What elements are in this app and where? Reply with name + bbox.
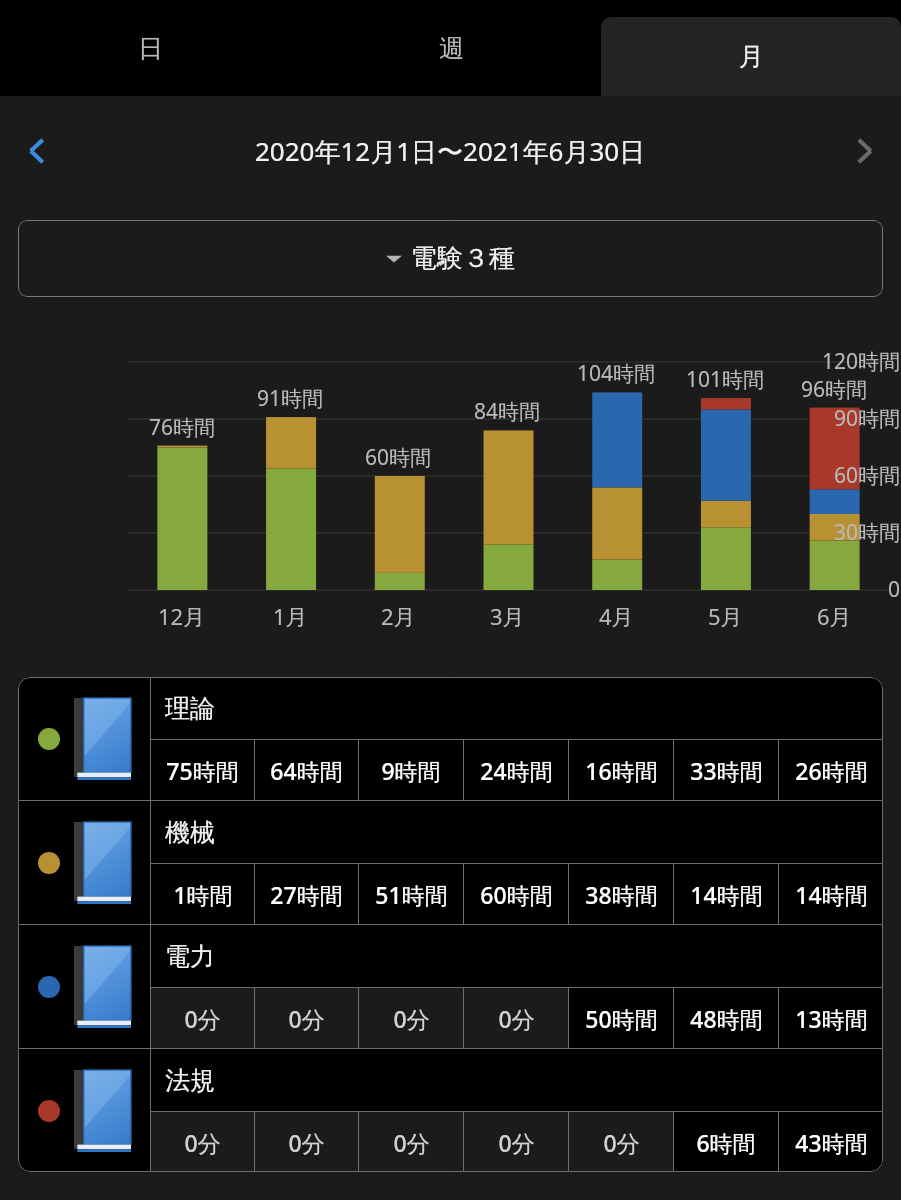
- button[interactable]: 日: [0, 0, 301, 96]
- staticText: 法規: [165, 1065, 215, 1096]
- staticText: 2020年12月1日〜2021年6月30日: [255, 133, 646, 169]
- button[interactable]: 0分: [151, 1112, 254, 1172]
- staticText: 38時間: [585, 879, 658, 910]
- staticText: 16時間: [585, 755, 658, 786]
- button[interactable]: 0分: [359, 1112, 463, 1172]
- staticText: 96時間: [801, 375, 868, 404]
- button[interactable]: 1時間: [151, 864, 254, 924]
- button[interactable]: 0分: [255, 988, 358, 1048]
- staticText: 0分: [498, 1003, 535, 1034]
- button[interactable]: 14時間: [779, 864, 883, 924]
- button[interactable]: 51時間: [359, 864, 463, 924]
- button[interactable]: 26時間: [779, 740, 883, 800]
- button[interactable]: 9時間: [359, 740, 463, 800]
- staticText: 0分: [393, 1127, 430, 1158]
- staticText: 3月: [490, 601, 525, 631]
- button[interactable]: 機械: [18, 801, 883, 924]
- button[interactable]: 13時間: [779, 988, 883, 1048]
- staticText: 9時間: [381, 755, 441, 786]
- button[interactable]: Previous period: [6, 120, 68, 182]
- staticText: 30時間: [834, 518, 901, 547]
- button[interactable]: 33時間: [674, 740, 778, 800]
- staticText: 50時間: [585, 1003, 658, 1034]
- staticText: 27時間: [270, 879, 343, 910]
- staticText: 60時間: [834, 461, 901, 490]
- button[interactable]: 48時間: [674, 988, 778, 1048]
- button[interactable]: 64時間: [255, 740, 358, 800]
- button[interactable]: 理論: [18, 677, 883, 800]
- staticText: 104時間: [577, 359, 656, 388]
- staticText: 電験３種: [411, 242, 515, 275]
- staticText: 60時間: [365, 443, 432, 472]
- staticText: 13時間: [795, 1003, 868, 1034]
- staticText: 0分: [288, 1127, 325, 1158]
- button[interactable]: 6時間: [674, 1112, 778, 1172]
- button[interactable]: 0分: [255, 1112, 358, 1172]
- button[interactable]: Next period: [833, 120, 895, 182]
- staticText: 84時間: [474, 397, 541, 426]
- staticText: 0: [888, 575, 901, 604]
- staticText: 0分: [184, 1003, 221, 1034]
- staticText: 120時間: [822, 347, 901, 376]
- staticText: 12月: [158, 601, 206, 631]
- button[interactable]: 27時間: [255, 864, 358, 924]
- staticText: 6時間: [696, 1127, 756, 1158]
- button[interactable]: 月: [601, 17, 901, 96]
- button[interactable]: 電力: [18, 925, 883, 1048]
- button[interactable]: 法規: [18, 1049, 883, 1172]
- button[interactable]: 0分: [569, 1112, 673, 1172]
- staticText: 26時間: [795, 755, 868, 786]
- button[interactable]: 16時間: [569, 740, 673, 800]
- button[interactable]: 38時間: [569, 864, 673, 924]
- button[interactable]: 60時間: [464, 864, 568, 924]
- staticText: 64時間: [270, 755, 343, 786]
- staticText: 0分: [184, 1127, 221, 1158]
- button[interactable]: 0分: [464, 988, 568, 1048]
- staticText: 76時間: [149, 413, 216, 442]
- staticText: 0分: [393, 1003, 430, 1034]
- staticText: 101時間: [686, 365, 765, 394]
- staticText: 5月: [708, 601, 743, 631]
- staticText: 機械: [165, 817, 215, 848]
- staticText: 14時間: [795, 879, 868, 910]
- button[interactable]: 電験３種: [18, 220, 883, 297]
- staticText: 1時間: [173, 879, 233, 910]
- staticText: 43時間: [795, 1127, 868, 1158]
- staticText: 0分: [498, 1127, 535, 1158]
- staticText: 14時間: [690, 879, 763, 910]
- staticText: 6月: [817, 601, 852, 631]
- staticText: 日: [138, 33, 163, 64]
- staticText: 48時間: [690, 1003, 763, 1034]
- button[interactable]: 50時間: [569, 988, 673, 1048]
- staticText: 60時間: [480, 879, 553, 910]
- staticText: 91時間: [257, 384, 324, 413]
- staticText: 0分: [288, 1003, 325, 1034]
- button[interactable]: 0分: [359, 988, 463, 1048]
- button[interactable]: 週: [301, 0, 601, 96]
- button[interactable]: 24時間: [464, 740, 568, 800]
- staticText: 月: [739, 41, 764, 72]
- staticText: 51時間: [375, 879, 448, 910]
- staticText: 75時間: [166, 755, 239, 786]
- staticText: 90時間: [834, 404, 901, 433]
- staticText: 0分: [603, 1127, 640, 1158]
- staticText: 1月: [273, 601, 308, 631]
- staticText: 2月: [381, 601, 416, 631]
- staticText: 週: [439, 33, 464, 64]
- staticText: 電力: [165, 941, 215, 972]
- button[interactable]: 0分: [464, 1112, 568, 1172]
- button[interactable]: 0分: [151, 988, 254, 1048]
- staticText: 理論: [165, 693, 215, 724]
- staticText: 33時間: [690, 755, 763, 786]
- button[interactable]: 14時間: [674, 864, 778, 924]
- staticText: 24時間: [480, 755, 553, 786]
- button[interactable]: 43時間: [779, 1112, 883, 1172]
- button[interactable]: 75時間: [151, 740, 254, 800]
- staticText: 4月: [599, 601, 634, 631]
